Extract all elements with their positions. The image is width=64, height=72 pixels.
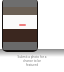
staticText: Submit a photo for a chance to be featur…: [17, 55, 47, 67]
button[interactable]: [19, 24, 26, 26]
